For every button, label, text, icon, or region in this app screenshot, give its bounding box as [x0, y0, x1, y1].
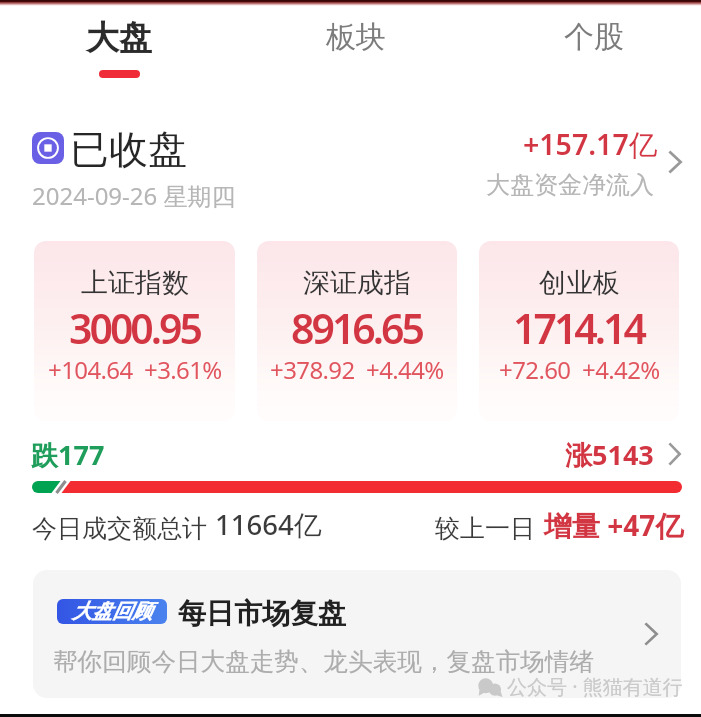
staticText: +104.64 [48, 353, 133, 386]
button[interactable]: 创业板 [479, 241, 679, 421]
button[interactable]: 大盘资金净流入详情 [470, 120, 695, 205]
button[interactable]: 大盘回顾 [33, 570, 681, 698]
button[interactable]: 大盘 [49, 0, 189, 86]
staticText: 2024-09-26 星期四 [32, 179, 236, 212]
staticText: 8916.65 [291, 300, 423, 356]
staticText: 大盘 [86, 17, 152, 59]
staticText: 公众号 · 熊猫有道行 [507, 673, 683, 700]
staticText: 大盘资金净流入 [486, 170, 654, 200]
staticText: 帮你回顾今日大盘走势、龙头表现，复盘市场情绪 [53, 646, 595, 677]
staticText: 创业板 [539, 266, 620, 300]
staticText: 板块 [326, 18, 386, 56]
staticText: 跌177 [31, 436, 105, 473]
button[interactable]: 个股 [524, 0, 664, 86]
button[interactable]: 上证指数 [34, 241, 235, 421]
staticText: 增量 +47亿 [544, 506, 684, 544]
staticText: +157.17亿 [523, 125, 658, 164]
staticText: 上证指数 [81, 266, 189, 300]
staticText: +4.42% [582, 353, 660, 386]
staticText: 今日成交额总计 [32, 513, 207, 544]
staticText: 较上一日 [435, 513, 535, 544]
staticText: 深证成指 [303, 266, 411, 300]
staticText: 大盘回顾 [72, 599, 152, 624]
staticText: +72.60 [499, 353, 571, 386]
staticText: 3000.95 [69, 300, 201, 356]
button[interactable]: 涨跌家数详情 [26, 430, 690, 500]
staticText: +4.44% [366, 353, 444, 386]
staticText: 11664亿 [215, 506, 322, 544]
staticText: 1714.14 [513, 300, 645, 356]
staticText: 每日市场复盘 [178, 596, 346, 631]
staticText: +378.92 [270, 353, 355, 386]
button[interactable]: 板块 [286, 0, 426, 86]
staticText: +3.61% [144, 353, 222, 386]
button[interactable]: 深证成指 [257, 241, 457, 421]
staticText: 已收盘 [70, 125, 187, 174]
staticText: 涨5143 [565, 436, 654, 473]
staticText: 个股 [564, 18, 624, 56]
